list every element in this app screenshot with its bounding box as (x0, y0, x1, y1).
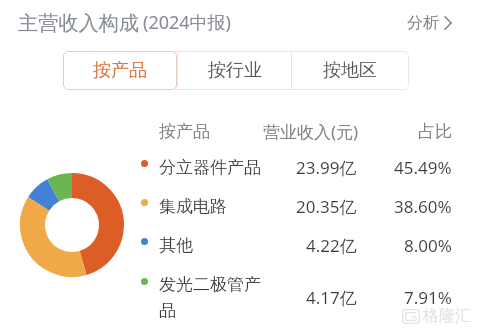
staticText: 按地区 (323, 59, 377, 82)
staticText: 格隆汇 (423, 306, 471, 326)
button[interactable]: 其他 (133, 226, 467, 264)
staticText: 7.91% (404, 286, 452, 309)
button[interactable]: 发光二极管产 (133, 267, 467, 317)
staticText: 品 (159, 300, 176, 321)
staticText: 分立器件产品 (159, 157, 261, 178)
staticText: 按产品 (159, 121, 210, 142)
staticText: 分析 (407, 13, 439, 33)
staticText: 占比 (418, 121, 452, 142)
staticText: 集成电路 (159, 196, 227, 217)
staticText: 营业收入(元) (263, 120, 359, 143)
button[interactable]: 集成电路 (133, 187, 467, 225)
other: 收入构成饼图 (20, 173, 124, 277)
button[interactable]: 按行业 (178, 51, 291, 90)
staticText: 8.00% (404, 234, 452, 257)
staticText: 主营收入构成 (18, 11, 140, 36)
staticText: 发光二极管产 (159, 274, 261, 295)
staticText: (2024中报) (143, 10, 231, 35)
button[interactable]: 按产品 (63, 51, 177, 90)
button[interactable]: 分立器件产品 (133, 148, 467, 186)
staticText: 4.22亿 (306, 234, 357, 257)
staticText: 按产品 (93, 59, 147, 82)
staticText: 45.49% (394, 156, 452, 179)
staticText: 20.35亿 (296, 195, 357, 218)
staticText: 其他 (159, 235, 193, 256)
staticText: 23.99亿 (296, 156, 357, 179)
staticText: 4.17亿 (306, 286, 357, 309)
button[interactable]: 按地区 (292, 51, 408, 90)
staticText: 按行业 (208, 59, 262, 82)
button[interactable]: 分析 (401, 9, 458, 37)
staticText: 38.60% (394, 195, 452, 218)
